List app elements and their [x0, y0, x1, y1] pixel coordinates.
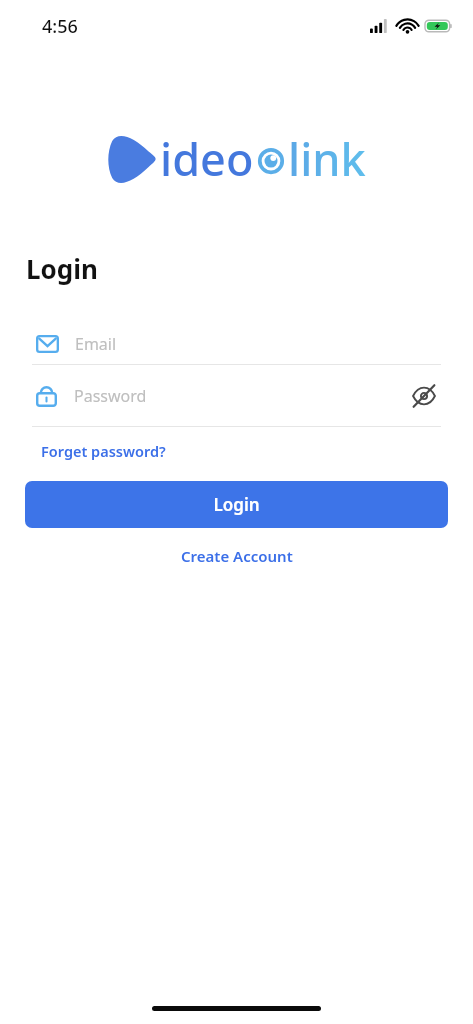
staticText: Email [75, 333, 117, 355]
button[interactable]: Show password [405, 380, 443, 412]
button[interactable]: Forget password? [41, 439, 166, 463]
staticText: 4:56 [42, 14, 78, 39]
button[interactable]: Password [0, 365, 473, 426]
button[interactable]: Create Account [171, 542, 303, 570]
staticText: Login [26, 251, 98, 286]
button[interactable]: Login [25, 481, 448, 528]
staticText: ideo [160, 128, 254, 189]
staticText: Create Account [181, 546, 293, 566]
staticText: Password [74, 385, 405, 407]
staticText: Login [213, 493, 260, 516]
staticText: Forget password? [41, 441, 166, 461]
button[interactable]: Email [0, 324, 473, 364]
staticText: link [288, 128, 366, 189]
